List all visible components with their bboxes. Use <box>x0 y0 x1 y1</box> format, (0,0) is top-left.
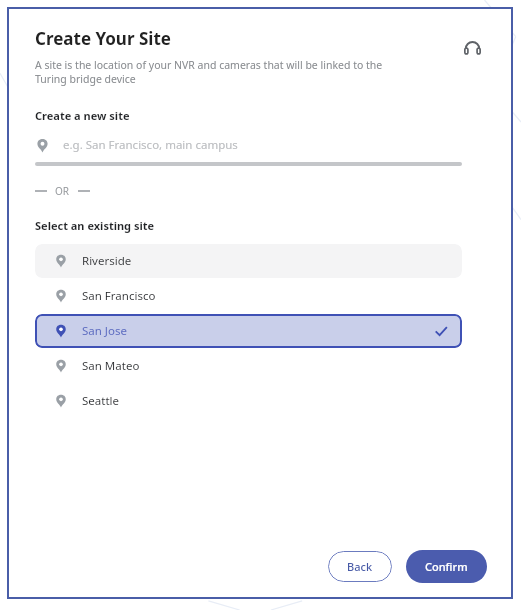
staticText: Create Your Site <box>35 27 171 50</box>
button[interactable]: Support <box>457 33 487 63</box>
staticText: Confirm <box>425 559 468 574</box>
staticText: e.g. San Francisco, main campus <box>63 137 238 153</box>
button[interactable]: San Francisco <box>35 279 462 313</box>
staticText: Create a new site <box>35 108 130 123</box>
staticText: OR <box>55 184 70 198</box>
staticText: A site is the location of your NVR and c… <box>35 58 383 72</box>
staticText: Turing bridge device <box>35 72 136 86</box>
staticText: San Francisco <box>82 288 156 304</box>
staticText: Riverside <box>82 253 132 269</box>
button[interactable]: Back <box>328 551 392 582</box>
staticText: San Jose <box>82 323 127 339</box>
button[interactable]: Riverside <box>35 244 462 278</box>
staticText: San Mateo <box>82 358 140 374</box>
button[interactable]: Seattle <box>35 384 462 418</box>
button[interactable]: San Mateo <box>35 349 462 383</box>
button[interactable]: San Jose <box>35 314 462 348</box>
staticText: Back <box>347 559 373 574</box>
staticText: Seattle <box>82 393 120 409</box>
button[interactable]: Confirm <box>406 550 487 583</box>
button[interactable]: e.g. San Francisco, main campus <box>35 137 462 153</box>
staticText: Select an existing site <box>35 218 155 233</box>
